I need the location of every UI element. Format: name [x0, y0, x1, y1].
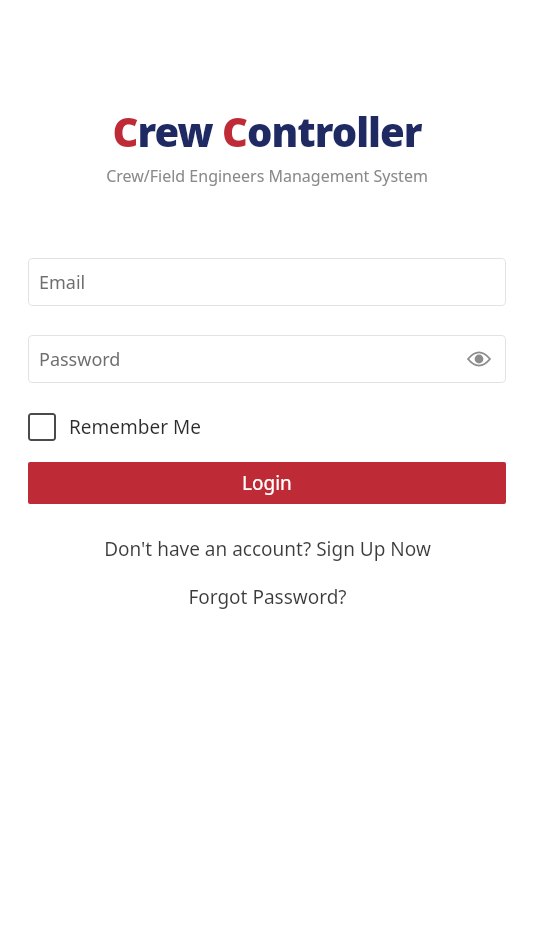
button[interactable]: Remember Me [28, 413, 205, 441]
button[interactable]: Don't have an account? Sign Up Now [96, 532, 439, 566]
button[interactable]: Login [28, 462, 506, 504]
button[interactable]: Password [28, 335, 506, 383]
staticText: Crew Controller [112, 104, 422, 158]
button[interactable]: Show password [464, 344, 494, 374]
staticText: Don't have an account? Sign Up Now [104, 536, 431, 562]
staticText: Forgot Password? [188, 584, 347, 610]
staticText: Password [39, 347, 121, 372]
staticText: Crew/Field Engineers Management System [106, 165, 428, 187]
button[interactable]: Forgot Password? [180, 580, 355, 614]
button[interactable]: Email [28, 258, 506, 306]
staticText: Email [39, 270, 86, 295]
staticText: Login [242, 470, 292, 496]
staticText: Remember Me [69, 414, 201, 440]
